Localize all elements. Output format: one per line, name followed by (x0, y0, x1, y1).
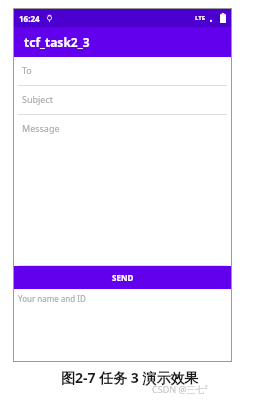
staticText: 图2-7 任务 3 演示效果 (61, 368, 199, 387)
staticText: LTE (195, 14, 206, 22)
staticText: 16:24 (19, 13, 40, 24)
staticText: SEND (112, 272, 134, 283)
staticText: CSDN @三七² (152, 383, 208, 395)
staticText: To (22, 64, 32, 76)
button[interactable]: Subject (14, 86, 231, 115)
button[interactable]: Message (14, 115, 231, 266)
staticText: Your name and ID (18, 293, 86, 304)
button[interactable]: SEND (14, 266, 231, 289)
staticText: Message (22, 122, 60, 134)
staticText: Subject (22, 93, 54, 105)
staticText: tcf_task2_3 (24, 34, 90, 50)
button[interactable]: To (14, 57, 231, 86)
button[interactable]: tcf_task2_3 (14, 27, 231, 57)
